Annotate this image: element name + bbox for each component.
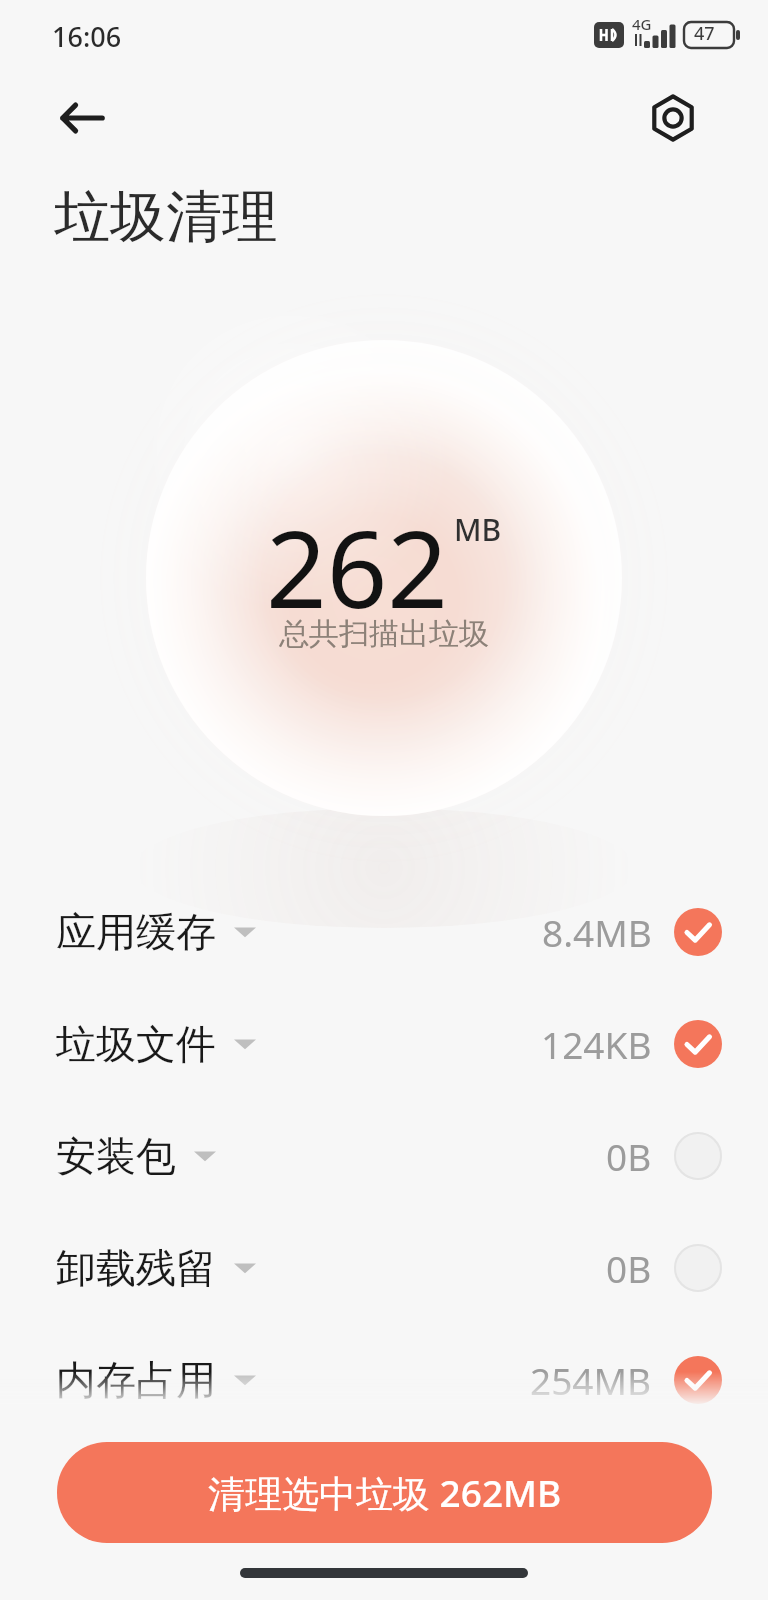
staticText: 总共扫描出垃圾 xyxy=(0,615,768,653)
staticText: 254MB xyxy=(530,1355,652,1405)
button[interactable]: 卸载残留 xyxy=(0,1212,768,1324)
button[interactable]: Selected xyxy=(674,1356,722,1404)
staticText: 0B xyxy=(606,1131,652,1181)
staticText: 应用缓存 xyxy=(56,907,216,957)
staticText: MB xyxy=(454,509,502,550)
staticText: 16:06 xyxy=(52,18,122,55)
button[interactable]: 安装包 xyxy=(0,1100,768,1212)
staticText: 124KB xyxy=(541,1019,652,1069)
staticText: 4G xyxy=(632,14,652,34)
button[interactable]: Not selected xyxy=(674,1132,722,1180)
staticText: 47 xyxy=(694,21,715,46)
staticText: 安装包 xyxy=(56,1131,176,1181)
button[interactable]: 应用缓存 xyxy=(0,876,768,988)
button[interactable]: 清理选中垃圾 262MB xyxy=(57,1442,712,1543)
button[interactable]: Back xyxy=(46,82,118,154)
staticText: 垃圾文件 xyxy=(56,1019,216,1069)
staticText: 8.4MB xyxy=(542,907,652,957)
button[interactable]: Not selected xyxy=(674,1244,722,1292)
button[interactable]: Selected xyxy=(674,908,722,956)
staticText: 262 xyxy=(266,495,448,639)
staticText: 垃圾清理 xyxy=(54,182,278,253)
button[interactable]: Settings xyxy=(637,82,709,154)
staticText: 清理选中垃圾 262MB xyxy=(208,1467,562,1518)
staticText: 卸载残留 xyxy=(56,1243,216,1293)
button[interactable]: 内存占用 xyxy=(0,1324,768,1436)
button[interactable]: Selected xyxy=(674,1020,722,1068)
staticText: 内存占用 xyxy=(56,1355,216,1405)
button[interactable]: 垃圾文件 xyxy=(0,988,768,1100)
staticText: 0B xyxy=(606,1243,652,1293)
